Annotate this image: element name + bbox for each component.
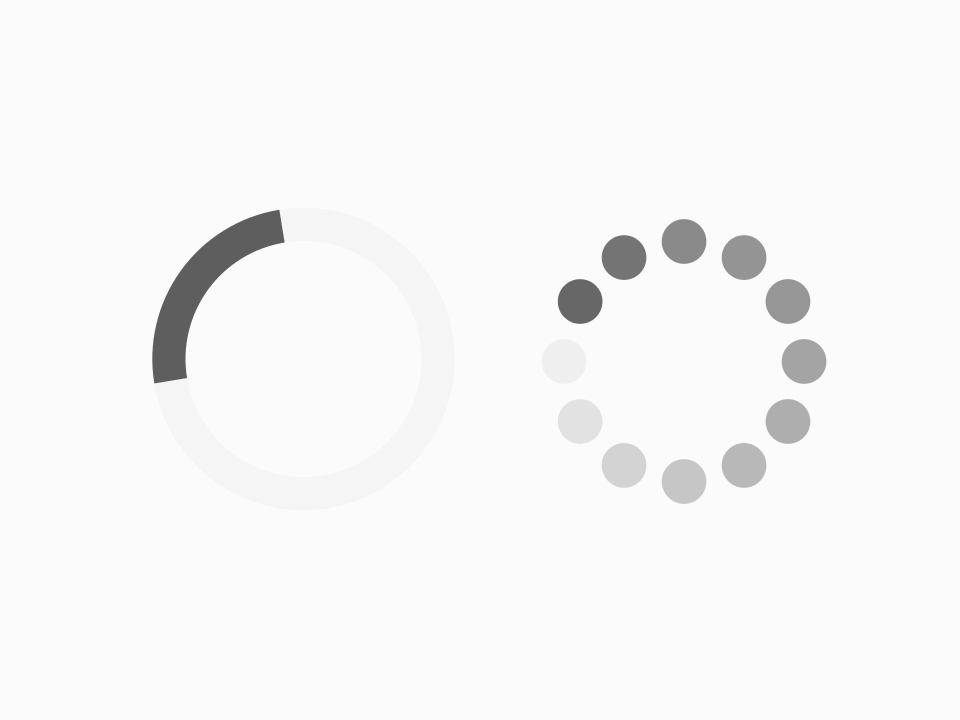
group: Loading (0, 0, 960, 720)
group: 25 percent (0, 0, 960, 720)
